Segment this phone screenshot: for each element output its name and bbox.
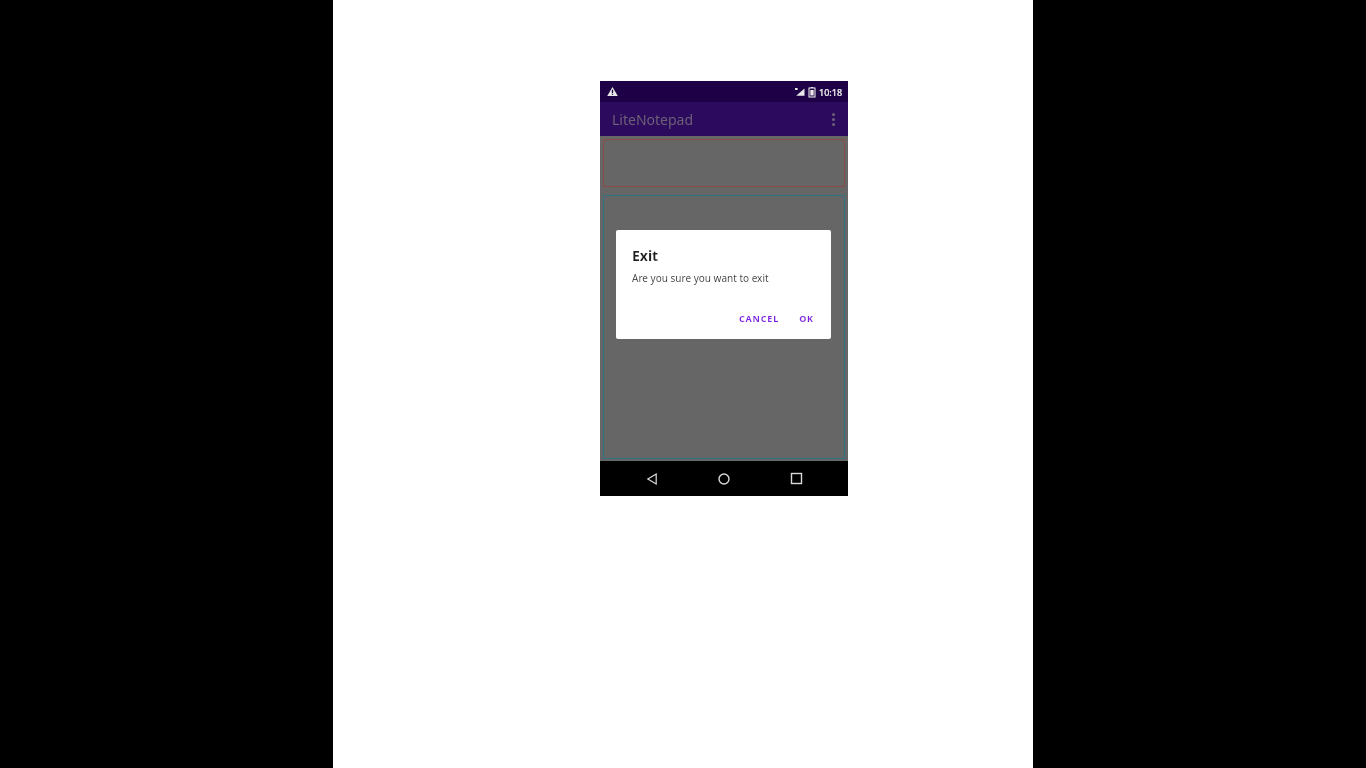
button[interactable]: Back [632,461,672,496]
staticText: Exit [632,246,659,265]
button[interactable]: CANCEL [732,307,786,329]
button[interactable]: OK [792,307,821,329]
staticText: Are you sure you want to exit [632,271,769,285]
button[interactable]: More options [818,104,848,134]
staticText: OK [799,312,814,324]
staticText: 10:18 [819,86,843,98]
button[interactable] [603,195,845,459]
staticText: LiteNotepad [612,110,694,129]
button[interactable]: Recent apps [776,461,816,496]
button[interactable] [603,139,845,187]
staticText: CANCEL [739,312,779,324]
button[interactable]: Home [704,461,744,496]
